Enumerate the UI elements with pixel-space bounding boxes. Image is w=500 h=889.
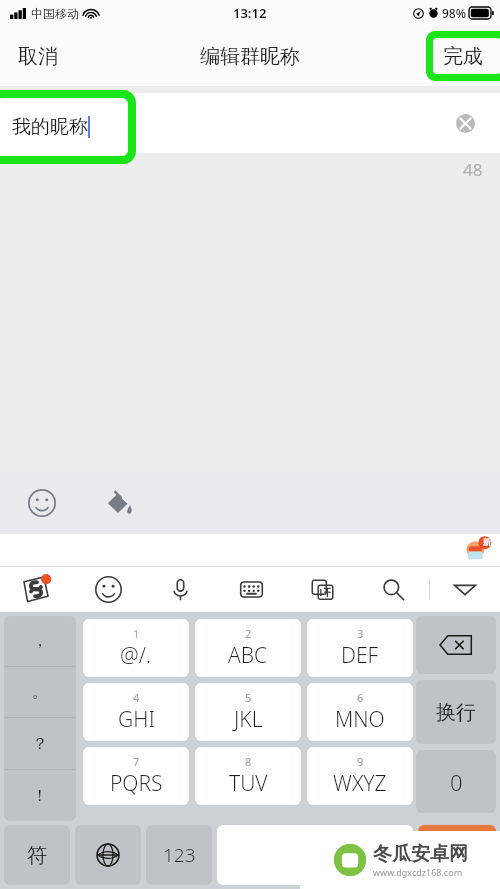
staticText: MNO — [335, 705, 385, 734]
button[interactable]: 9 — [307, 747, 413, 805]
button[interactable]: Switch language — [75, 825, 141, 885]
staticText: 我的昵称 — [12, 115, 88, 139]
staticText: 98% — [442, 5, 466, 21]
staticText: ？ — [32, 734, 48, 754]
staticText: 13:12 — [233, 4, 267, 22]
staticText: TUV — [229, 769, 268, 798]
staticText: 完成 — [443, 44, 483, 69]
button[interactable]: Search — [358, 566, 429, 612]
staticText: WXYZ — [333, 769, 387, 798]
button[interactable]: 0 — [416, 750, 496, 813]
staticText: 8 — [245, 754, 252, 769]
button[interactable]: New feature — [462, 535, 492, 565]
staticText: 6 — [357, 690, 364, 705]
staticText: 9 — [357, 754, 364, 769]
button[interactable]: 3 — [307, 619, 413, 677]
button[interactable]: Translate — [287, 566, 358, 612]
button[interactable]: 完成 — [433, 38, 500, 74]
button[interactable]: 8 — [195, 747, 301, 805]
staticText: @/. — [120, 641, 152, 670]
staticText: 符 — [27, 843, 47, 868]
staticText: 新 — [483, 537, 491, 547]
staticText: GHI — [118, 705, 155, 734]
staticText: 7 — [133, 754, 140, 769]
staticText: ！ — [32, 786, 48, 806]
button[interactable]: Theme — [98, 483, 138, 523]
button[interactable]: Keyboard layout — [216, 566, 287, 612]
staticText: JKL — [234, 705, 263, 734]
staticText: 1 — [133, 626, 140, 641]
button[interactable]: 换行 — [416, 680, 496, 744]
staticText: 编辑群昵称 — [200, 44, 300, 69]
button[interactable]: 1 — [83, 619, 189, 677]
button[interactable]: Voice input — [144, 566, 216, 612]
button[interactable]: 123 — [146, 825, 212, 885]
staticText: DEF — [341, 641, 379, 670]
staticText: 48 — [463, 158, 483, 181]
button[interactable]: ， — [4, 616, 76, 821]
staticText: 冬瓜安卓网 — [373, 842, 468, 866]
staticText: 2 — [245, 626, 252, 641]
button[interactable]: 7 — [83, 747, 189, 805]
button[interactable]: Clear text — [452, 110, 478, 136]
button[interactable]: 我的昵称 — [0, 98, 128, 156]
staticText: 取消 — [18, 44, 58, 69]
staticText: 。 — [32, 682, 48, 702]
button[interactable]: Emoji — [22, 483, 62, 523]
button[interactable]: Clear text — [0, 93, 500, 153]
button[interactable]: Hide keyboard — [429, 566, 500, 612]
staticText: 4 — [133, 690, 140, 705]
staticText: 3 — [357, 626, 364, 641]
staticText: 换行 — [436, 700, 476, 725]
button[interactable]: 4 — [83, 683, 189, 741]
button[interactable]: Emoji keyboard — [72, 566, 144, 612]
staticText: 中国移动 — [31, 6, 79, 21]
staticText: PQRS — [110, 769, 163, 798]
staticText: www.dgxcdz168.com — [373, 866, 463, 878]
button[interactable]: 符 — [4, 825, 70, 885]
button[interactable]: Sogou input settings — [0, 566, 72, 612]
staticText: 0 — [450, 767, 463, 797]
button[interactable]: Send — [418, 825, 496, 885]
button[interactable]: Delete — [416, 616, 496, 674]
button[interactable]: 5 — [195, 683, 301, 741]
button[interactable]: 2 — [195, 619, 301, 677]
button[interactable]: 取消 — [12, 38, 64, 75]
staticText: 5 — [245, 690, 252, 705]
button[interactable]: 6 — [307, 683, 413, 741]
staticText: 123 — [163, 842, 196, 868]
staticText: ， — [32, 631, 48, 651]
button[interactable]: Space — [217, 825, 413, 885]
staticText: ABC — [228, 641, 268, 670]
